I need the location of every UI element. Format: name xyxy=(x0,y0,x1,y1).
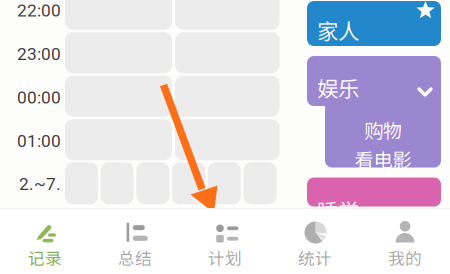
staticText: 家人 xyxy=(317,14,359,45)
button[interactable]: 家人 xyxy=(307,1,441,46)
button[interactable]: 我的 xyxy=(360,208,450,274)
staticText: 购物 xyxy=(364,115,402,143)
button[interactable]: 记录 xyxy=(0,208,90,274)
button[interactable]: 统计 xyxy=(270,208,360,274)
staticText: 我的 xyxy=(388,245,422,270)
staticText: 2.~7. xyxy=(19,174,61,194)
staticText: 计划 xyxy=(208,245,242,270)
staticText: 22:00 xyxy=(17,0,61,21)
staticText: 23:00 xyxy=(17,44,61,64)
staticText: 娱乐 xyxy=(317,72,359,103)
staticText: 00:00 xyxy=(17,87,61,108)
staticText: 记录 xyxy=(28,245,62,270)
button[interactable]: 娱乐 xyxy=(307,56,441,167)
staticText: 睡觉 xyxy=(317,195,359,225)
button[interactable]: 总结 xyxy=(90,208,180,274)
staticText: 01:00 xyxy=(17,131,61,151)
staticText: 总结 xyxy=(118,245,152,270)
staticText: 统计 xyxy=(298,245,332,270)
staticText: 看电影 xyxy=(354,145,411,173)
button[interactable]: 计划 xyxy=(180,208,270,274)
button[interactable]: 睡觉 xyxy=(307,178,441,207)
